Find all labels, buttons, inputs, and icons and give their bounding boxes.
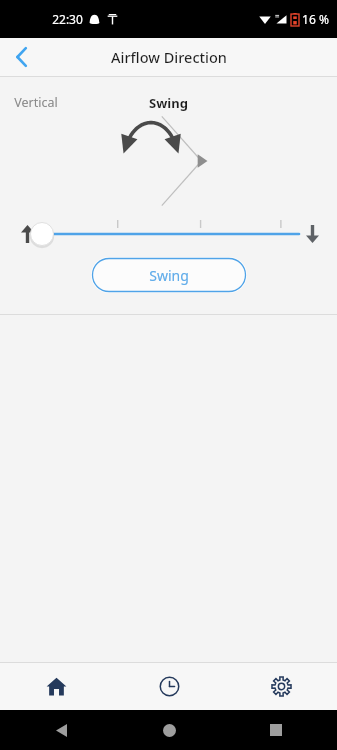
staticText: Swing (149, 266, 189, 285)
button[interactable]: Airflow down (299, 221, 325, 247)
button[interactable]: Home (0, 663, 113, 710)
button[interactable]: Back (0, 38, 44, 76)
button[interactable]: Swing (91, 257, 247, 293)
button[interactable]: Back (46, 715, 76, 745)
staticText: 16 % (302, 11, 329, 27)
staticText: Swing (149, 94, 188, 112)
staticText: Vertical (14, 94, 58, 111)
staticText: 22:30 (52, 11, 83, 27)
button[interactable]: Recents (261, 715, 291, 745)
button[interactable]: Airflow up (14, 221, 40, 247)
staticText: Airflow Direction (111, 47, 227, 67)
button[interactable]: Airflow direction slider (40, 212, 299, 256)
button[interactable]: Settings (225, 663, 337, 710)
button[interactable]: Schedule (113, 663, 225, 710)
button[interactable]: Home (154, 715, 184, 745)
